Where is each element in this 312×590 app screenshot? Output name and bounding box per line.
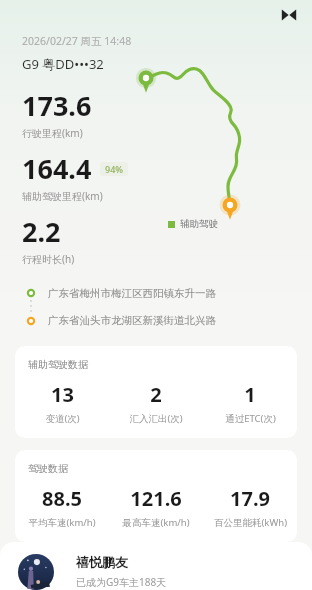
staticText: 辅助驾驶数据 [28,358,88,371]
staticText: 94% [105,163,123,175]
staticText: 已成为G9车主188天 [76,575,167,589]
staticText: 平均车速(km/h) [28,516,96,529]
button[interactable]: 辅助驾驶数据 [15,346,297,438]
staticText: 2.2 [22,213,61,250]
button[interactable]: 驾驶数据 [15,450,297,542]
staticText: 百公里能耗(kWh) [214,516,287,529]
staticText: 汇入汇出(次) [129,412,183,425]
staticText: 1 [244,381,256,408]
staticText: 辅助驾驶 [180,218,218,230]
staticText: 通过ETC(次) [225,412,276,425]
staticText: 驾驶数据 [28,462,68,475]
staticText: 2026/02/27 周五 14:48 [22,34,132,48]
staticText: 173.6 [22,87,92,124]
staticText: 广东省汕头市龙湖区新溪街道北兴路 [48,314,216,327]
staticText: 17.9 [230,485,270,512]
staticText: 禧悦鹏友 [76,554,128,570]
staticText: 88.5 [42,485,82,512]
staticText: 2 [150,381,162,408]
button[interactable]: Close [276,2,302,28]
staticText: 行程时长(h) [22,252,75,266]
button[interactable]: 禧悦鹏友 [0,542,312,590]
staticText: G9 粤DD•••32 [22,55,104,73]
staticText: 变道(次) [45,412,80,425]
staticText: 164.4 [22,150,92,187]
staticText: 最高车速(km/h) [122,516,190,529]
staticText: 辅助驾驶里程(km) [22,189,103,203]
staticText: 13 [51,381,74,408]
staticText: 行驶里程(km) [22,126,83,140]
staticText: 广东省梅州市梅江区西阳镇东升一路 [48,287,216,300]
staticText: 121.6 [130,485,182,512]
